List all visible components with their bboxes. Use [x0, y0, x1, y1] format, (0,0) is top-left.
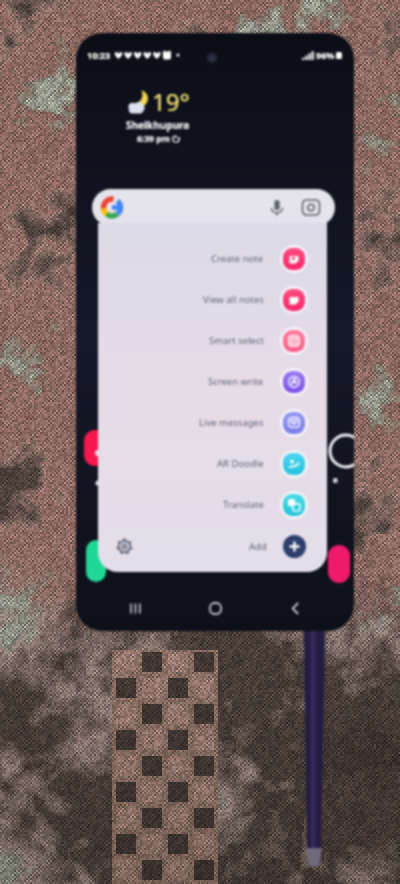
- button[interactable]: Smart select: [98, 320, 327, 361]
- button[interactable]: [92, 189, 335, 226]
- button[interactable]: Recents: [114, 593, 156, 623]
- button[interactable]: View all notes: [98, 279, 327, 320]
- button[interactable]: Translate: [98, 484, 327, 525]
- button[interactable]: Back: [274, 593, 316, 623]
- staticText: e: [333, 474, 338, 485]
- button[interactable]: Home: [194, 593, 236, 623]
- staticText: Create note: [211, 252, 264, 265]
- button[interactable]: Create note: [98, 238, 327, 279]
- staticText: Translate: [223, 498, 264, 511]
- staticText: 10:23: [87, 49, 111, 61]
- button[interactable]: Live messages: [98, 402, 327, 443]
- button[interactable]: Screen write: [98, 361, 327, 402]
- staticText: Screen write: [208, 375, 264, 388]
- button[interactable]: Settings: [112, 534, 136, 558]
- staticText: View all notes: [203, 293, 264, 306]
- button[interactable]: AR Doodle: [98, 443, 327, 484]
- staticText: 19°: [152, 85, 190, 118]
- staticText: Sheikhupura: [126, 118, 190, 132]
- staticText: 96%: [316, 49, 335, 61]
- staticText: 6:39 pm: [137, 133, 170, 145]
- staticText: Live messages: [199, 416, 264, 429]
- staticText: Add: [249, 540, 267, 553]
- button[interactable]: Add: [283, 535, 306, 558]
- staticText: AR Doodle: [217, 457, 264, 470]
- staticText: Smart select: [209, 334, 264, 347]
